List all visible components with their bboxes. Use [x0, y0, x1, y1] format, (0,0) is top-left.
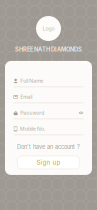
staticText: Full Name — [20, 78, 43, 84]
staticText: Mobile No. — [20, 126, 45, 132]
staticText: Don't have an account ? — [17, 144, 80, 150]
button[interactable]: Full Name — [13, 78, 83, 87]
button[interactable]: Sign up — [17, 156, 79, 169]
button[interactable]: Password — [13, 110, 83, 119]
staticText: Logo — [42, 25, 54, 32]
button[interactable]: Mobile No. — [13, 126, 83, 135]
staticText: SHREE NATH DIAMONDS — [15, 46, 82, 53]
staticText: Email — [20, 94, 32, 100]
staticText: Password — [20, 110, 44, 116]
staticText: Sign up — [36, 159, 60, 166]
button[interactable]: Email — [13, 94, 83, 103]
